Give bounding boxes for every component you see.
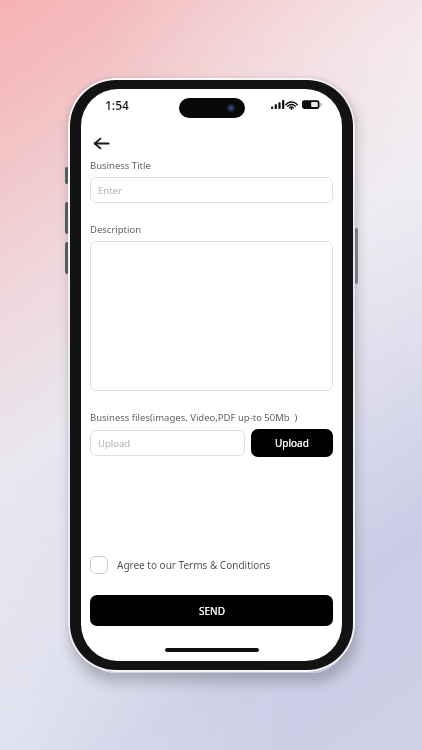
- button[interactable]: Upload: [90, 430, 245, 456]
- button[interactable]: SEND: [90, 595, 333, 626]
- staticText: Business files(images, Video,PDF up-to 5…: [90, 411, 298, 424]
- staticText: 1:54: [105, 97, 129, 113]
- staticText: Agree to our Terms & Conditions: [117, 558, 271, 572]
- staticText: Business Title: [90, 159, 151, 172]
- staticText: Upload: [98, 437, 131, 450]
- staticText: Upload: [275, 436, 309, 450]
- button[interactable]: Upload: [251, 429, 333, 457]
- staticText: Enter: [98, 184, 122, 197]
- button[interactable]: Agree to our Terms & Conditions: [90, 556, 271, 574]
- button[interactable]: Enter: [90, 177, 333, 203]
- button[interactable]: [90, 241, 333, 391]
- staticText: Description: [90, 223, 142, 236]
- staticText: SEND: [199, 604, 225, 618]
- button[interactable]: Back: [85, 127, 117, 159]
